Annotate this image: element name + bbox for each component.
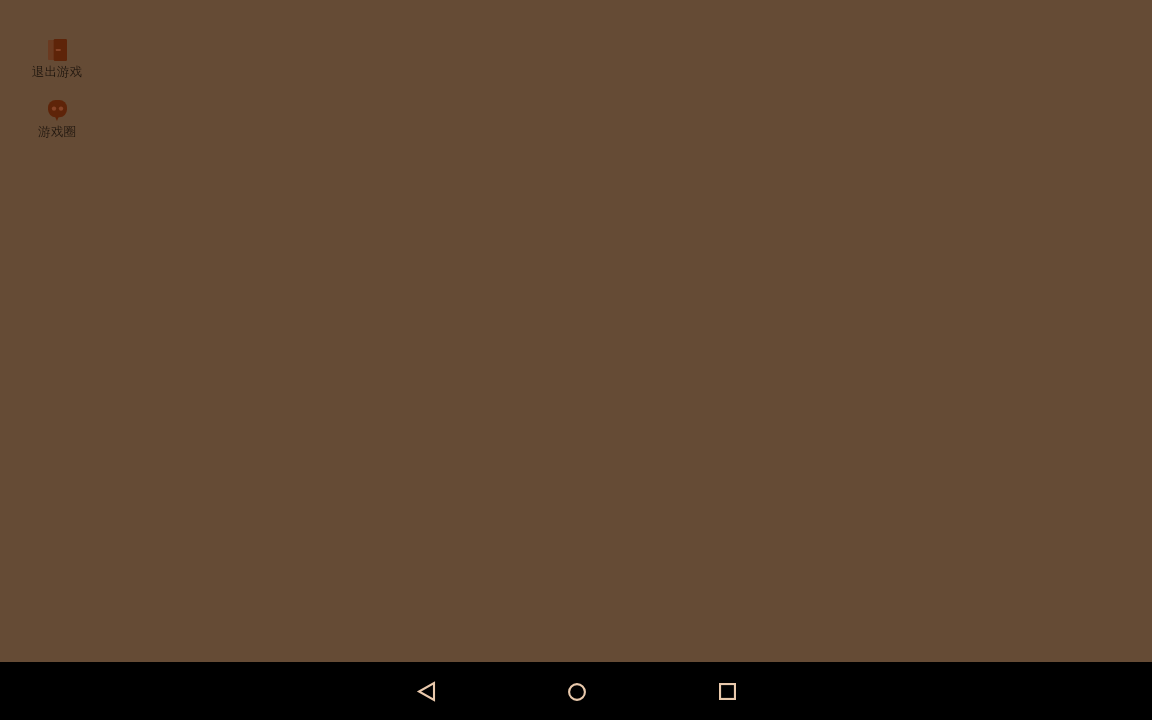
button[interactable]: Exit game	[29, 39, 85, 80]
staticText: 游戏圈	[38, 124, 76, 140]
staticText: 退出游戏	[32, 64, 82, 80]
button[interactable]: Recent apps	[698, 662, 756, 720]
button[interactable]: Home	[548, 662, 606, 720]
button[interactable]: Back	[396, 662, 454, 720]
button[interactable]: Game circle	[29, 99, 85, 140]
